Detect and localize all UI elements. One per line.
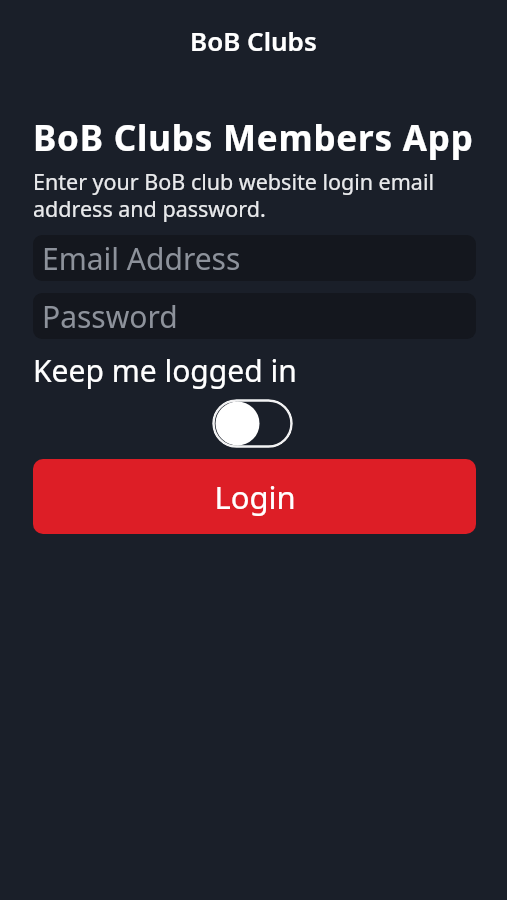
staticText: Enter your BoB club website login email … [33,167,434,223]
staticText: Login [214,476,296,518]
staticText: Password [42,296,178,337]
staticText: Email Address [42,238,241,279]
button[interactable]: Password [33,293,476,339]
button[interactable]: Email Address [33,235,476,281]
staticText: BoB Clubs [190,23,317,58]
button[interactable] [212,399,293,448]
button[interactable]: Login [33,459,476,534]
staticText: Keep me logged in [33,350,297,391]
staticText: BoB Clubs Members App [33,114,474,162]
